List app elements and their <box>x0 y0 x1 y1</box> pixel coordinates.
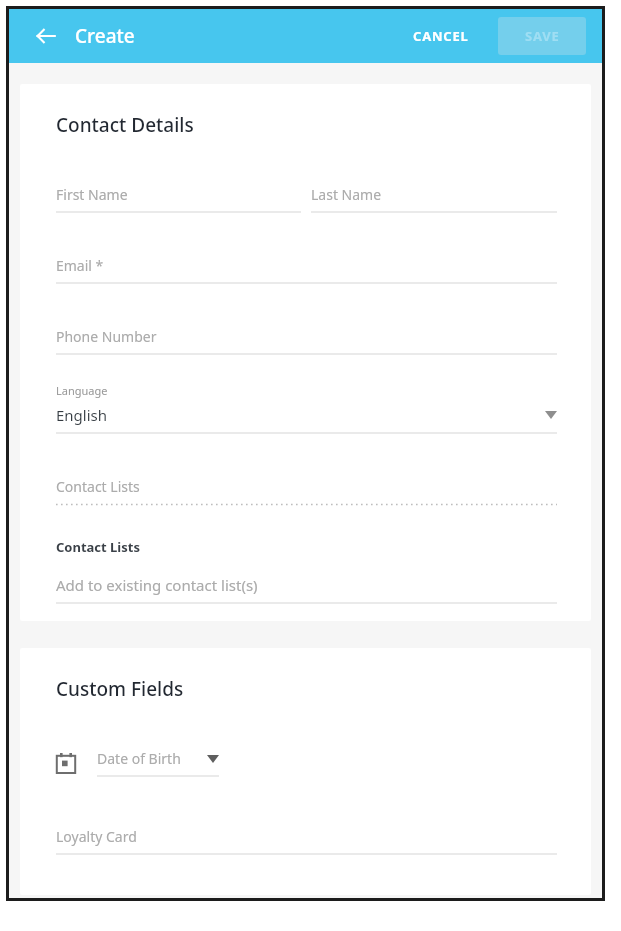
button[interactable]: Language <box>56 383 557 434</box>
button[interactable]: Back <box>29 19 63 53</box>
staticText: SAVE <box>525 27 560 45</box>
button[interactable]: Date of Birth <box>56 749 219 777</box>
button[interactable]: Loyalty Card <box>56 827 557 855</box>
button[interactable]: First Name <box>56 185 301 213</box>
staticText: Add to existing contact list(s) <box>56 575 258 595</box>
staticText: Loyalty Card <box>56 827 137 846</box>
button[interactable]: SAVE <box>498 17 586 55</box>
staticText: CANCEL <box>413 27 469 45</box>
staticText: Custom Fields <box>56 676 184 702</box>
staticText: Language <box>56 383 108 398</box>
button[interactable]: Email * <box>56 256 557 284</box>
staticText: Last Name <box>311 185 382 204</box>
button[interactable]: CANCEL <box>403 19 479 53</box>
staticText: English <box>56 405 545 425</box>
staticText: Date of Birth <box>97 749 207 768</box>
staticText: Contact Details <box>56 112 194 138</box>
staticText: First Name <box>56 185 128 204</box>
staticText: Contact Lists <box>56 538 140 556</box>
button[interactable]: Phone Number <box>56 327 557 355</box>
button[interactable]: Last Name <box>311 185 557 213</box>
staticText: Create <box>75 23 135 49</box>
staticText: Contact Lists <box>56 477 140 496</box>
staticText: Phone Number <box>56 327 157 346</box>
staticText: Email * <box>56 256 104 275</box>
button[interactable]: Add to existing contact list(s) <box>56 575 557 604</box>
